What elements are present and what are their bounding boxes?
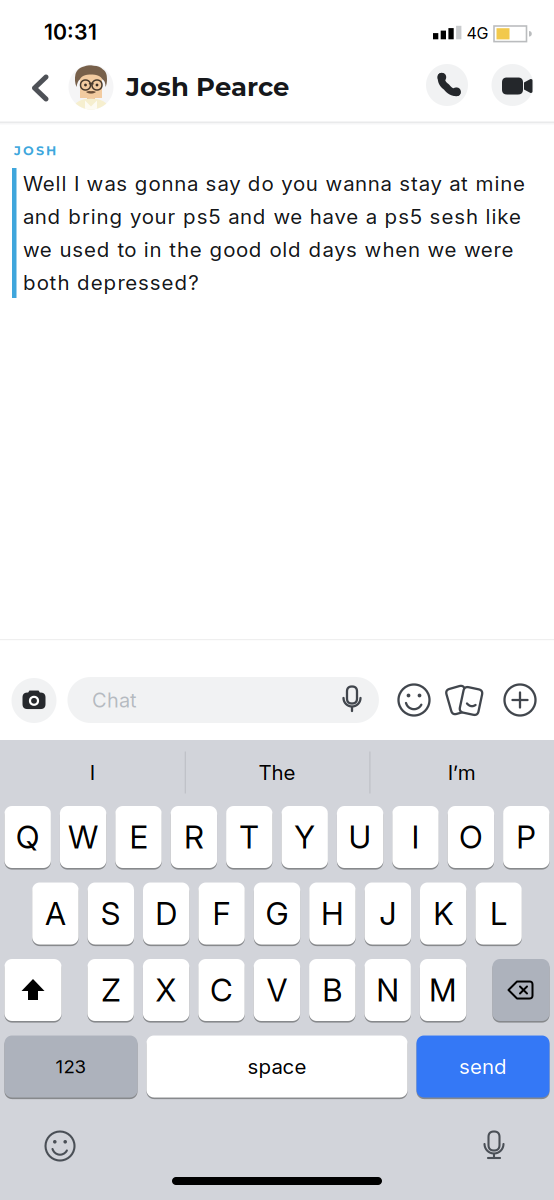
staticText: I’m	[448, 760, 476, 785]
staticText: P	[516, 818, 536, 856]
staticText: G	[265, 894, 288, 932]
staticText: E	[129, 818, 147, 856]
staticText: R	[184, 818, 204, 856]
staticText: T	[239, 818, 259, 856]
staticText: The	[258, 760, 295, 785]
staticText: send	[459, 1054, 507, 1079]
staticText: F	[213, 894, 231, 932]
staticText: 123	[55, 1055, 86, 1078]
staticText: D	[155, 894, 177, 932]
staticText: both depressed?	[23, 270, 199, 295]
staticText: I	[90, 760, 95, 785]
staticText: B	[322, 971, 342, 1009]
staticText: M	[429, 971, 457, 1009]
staticText: Y	[294, 818, 315, 856]
staticText: A	[45, 894, 66, 932]
staticText: we used to in the good old days when we …	[23, 237, 513, 262]
staticText: K	[433, 894, 453, 932]
staticText: J	[379, 894, 396, 932]
staticText: Z	[101, 971, 120, 1009]
staticText: Q	[16, 818, 40, 856]
staticText: X	[156, 971, 177, 1009]
staticText: Well I was gonna say do you wanna stay a…	[23, 171, 525, 196]
staticText: C	[210, 971, 233, 1009]
staticText: H	[321, 894, 344, 932]
staticText: L	[490, 894, 507, 932]
staticText: 10:31	[44, 19, 97, 45]
staticText: JOSH	[14, 143, 56, 158]
staticText: and bring your ps5 and we have a ps5 ses…	[23, 204, 521, 229]
staticText: V	[266, 971, 287, 1009]
staticText: N	[376, 971, 399, 1009]
staticText: Chat	[92, 688, 137, 712]
staticText: S	[101, 894, 121, 932]
staticText: space	[247, 1054, 306, 1079]
staticText: W	[68, 818, 98, 856]
staticText: U	[349, 818, 372, 856]
staticText: I	[411, 818, 419, 856]
staticText: Josh Pearce	[126, 71, 289, 102]
staticText: O	[459, 818, 483, 856]
staticText: 4G	[466, 24, 488, 43]
